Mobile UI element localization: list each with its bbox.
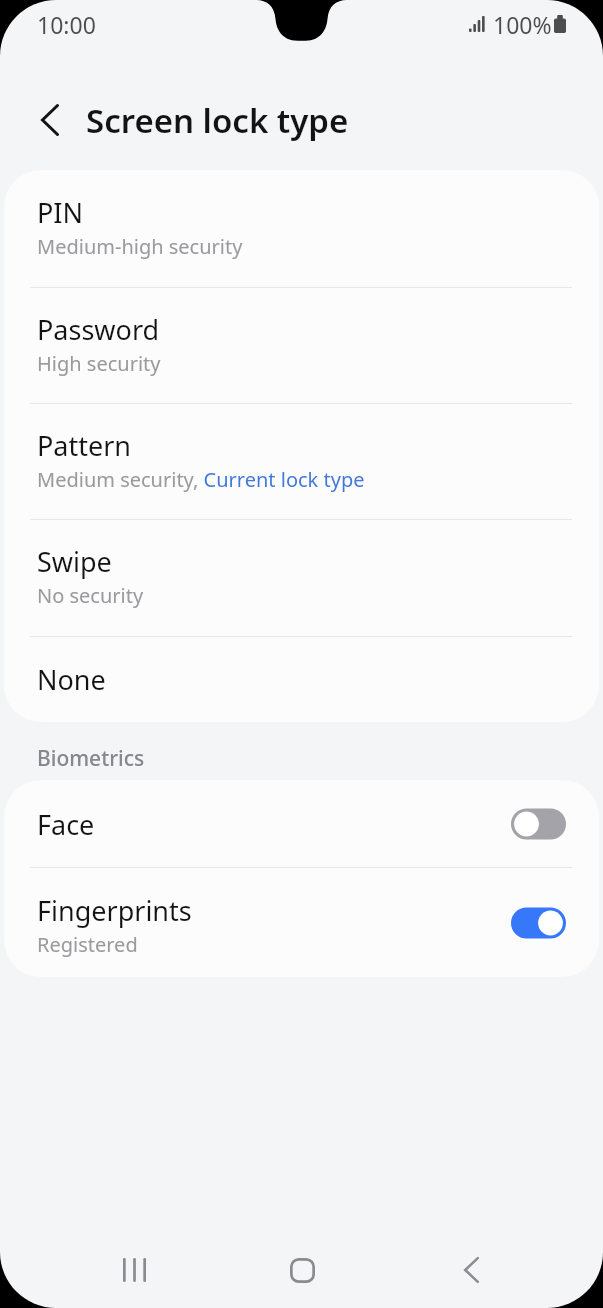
staticText: 10:00 (37, 9, 96, 40)
staticText: Medium-high security (37, 233, 243, 260)
staticText: Pattern (37, 427, 132, 464)
staticText: Face (37, 806, 95, 843)
staticText: PIN (37, 194, 84, 231)
button[interactable]: Disabled (511, 808, 566, 840)
staticText: Biometrics (37, 744, 145, 773)
button[interactable]: Enabled (511, 907, 566, 939)
button[interactable]: Swipe (4, 520, 599, 636)
staticText: None (37, 661, 106, 698)
staticText: Swipe (37, 543, 112, 580)
staticText: 100% (493, 9, 552, 40)
staticText: No security (37, 582, 144, 609)
staticText: High security (37, 350, 161, 377)
button[interactable]: Recent apps (100, 1236, 168, 1304)
staticText: Medium security, Current lock type (37, 466, 365, 493)
button[interactable]: Back (437, 1236, 505, 1304)
button[interactable]: Fingerprints (4, 868, 599, 977)
button[interactable]: Password (4, 288, 599, 403)
button[interactable]: Pattern (4, 404, 599, 519)
button[interactable]: Home (268, 1236, 336, 1304)
button[interactable]: Face (4, 780, 599, 867)
button[interactable]: Navigate up (22, 92, 78, 148)
button[interactable]: None (4, 637, 599, 722)
staticText: Screen lock type (86, 98, 349, 143)
staticText: Password (37, 311, 160, 348)
staticText: Fingerprints (37, 892, 192, 929)
staticText: Registered (37, 931, 138, 958)
button[interactable]: PIN (4, 170, 599, 287)
